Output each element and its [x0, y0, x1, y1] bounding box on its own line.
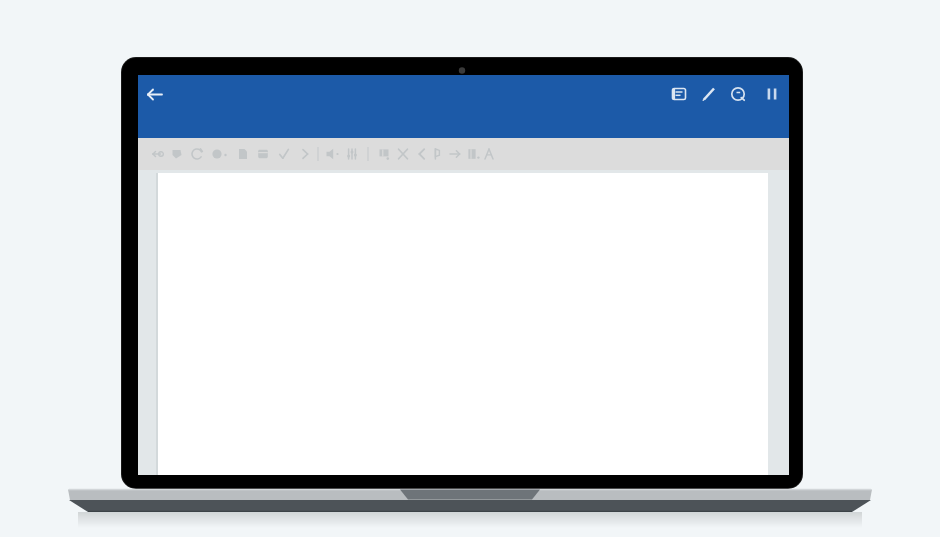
button[interactable]: Edit — [698, 82, 724, 108]
button[interactable]: Presentation view — [671, 82, 697, 108]
button[interactable]: Pause — [761, 82, 787, 108]
button[interactable]: Comments — [727, 82, 753, 108]
button[interactable]: Back — [142, 82, 168, 108]
